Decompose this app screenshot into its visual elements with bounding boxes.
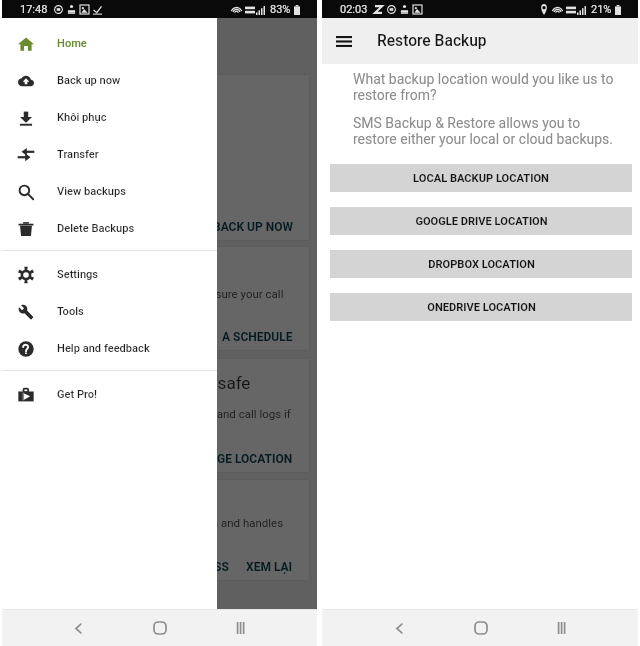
staticText: Home (57, 37, 87, 50)
staticText: Get Pro! (57, 388, 98, 401)
button[interactable]: Back (38, 610, 119, 646)
button[interactable]: DROPBOX LOCATION (330, 250, 632, 278)
button[interactable]: Settings (2, 256, 217, 293)
staticText: View backups (57, 185, 126, 198)
button[interactable]: Open navigation drawer (328, 25, 360, 57)
button[interactable]: Back up now (2, 62, 217, 99)
staticText: Keep your texts and calls safe (25, 373, 306, 393)
staticText: Delete Backups (57, 222, 135, 235)
staticText: XEM LẠI (246, 560, 293, 574)
staticText: Tools (57, 305, 84, 318)
staticText: LOCAL BACKUP LOCATION (413, 172, 549, 185)
staticText: Transfer (57, 148, 99, 161)
staticText: Read about new features and handles (91, 516, 310, 529)
button[interactable]: View backups (2, 173, 217, 210)
staticText: BACK UP NOW (213, 220, 293, 234)
staticText: GE LOCATION (217, 452, 293, 466)
button[interactable]: ONEDRIVE LOCATION (330, 293, 632, 321)
button[interactable]: Home (440, 610, 521, 646)
staticText: Settings (57, 268, 99, 281)
button[interactable]: Transfer (2, 136, 217, 173)
staticText: DROPBOX LOCATION (428, 258, 535, 271)
staticText: Restore Backup (377, 32, 487, 50)
button[interactable]: Help and feedback (2, 330, 217, 367)
staticText: SMS Backup & Restore allows you to resto… (353, 115, 614, 147)
button[interactable]: Home (2, 25, 217, 62)
staticText: What backup location would you like us t… (353, 71, 614, 103)
staticText: 02:03 (340, 3, 368, 16)
staticText: ONEDRIVE LOCATION (427, 301, 536, 314)
button[interactable]: Khôi phục (2, 99, 217, 136)
button[interactable]: Recent apps (521, 610, 602, 646)
staticText: Schedule regular backups to make sure yo… (37, 287, 310, 300)
staticText: 21% (591, 3, 612, 16)
staticText: A SCHEDULE (222, 330, 293, 344)
staticText: GOOGLE DRIVE LOCATION (415, 215, 548, 228)
button[interactable]: Tools (2, 293, 217, 330)
button[interactable]: Home (119, 610, 200, 646)
staticText: Back up now (57, 74, 121, 87)
button[interactable]: Delete Backups (2, 210, 217, 247)
button[interactable]: LOCAL BACKUP LOCATION (330, 164, 632, 192)
button[interactable]: GOOGLE DRIVE LOCATION (330, 207, 632, 235)
staticText: Create a backup of your messages and cal… (37, 407, 310, 420)
staticText: 17:48 (20, 3, 48, 16)
staticText: Khôi phục (57, 111, 107, 124)
button[interactable]: Back (359, 610, 440, 646)
staticText: Help and feedback (57, 342, 150, 355)
staticText: SS (214, 560, 229, 574)
button[interactable]: Get Pro! (2, 376, 217, 413)
button[interactable]: Recent apps (200, 610, 281, 646)
staticText: 83% (270, 3, 291, 16)
